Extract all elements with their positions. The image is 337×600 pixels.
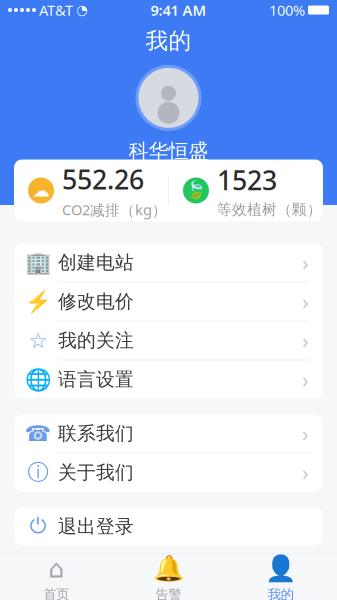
staticText: 等效植树（颗） xyxy=(217,201,322,219)
button[interactable]: ⓘ xyxy=(14,453,323,491)
staticText: 我的 xyxy=(268,586,294,600)
staticText: ◔ xyxy=(76,2,88,17)
staticText: › xyxy=(302,248,309,277)
staticText: 🌐 xyxy=(24,367,51,392)
staticText: 9:41 AM xyxy=(150,0,206,20)
staticText: AT&T xyxy=(39,0,73,20)
staticText: ⏻ xyxy=(29,516,46,537)
staticText: 退出登录 xyxy=(58,515,134,538)
staticText: 告警 xyxy=(155,586,181,600)
staticText: ⌂ xyxy=(48,554,64,583)
staticText: › xyxy=(302,419,309,448)
staticText: › xyxy=(302,326,309,355)
staticText: 联系我们 xyxy=(58,422,134,445)
staticText: 100% xyxy=(269,0,305,20)
staticText: › xyxy=(302,458,309,487)
button[interactable]: ⏻ xyxy=(14,507,323,545)
staticText: 🏢 xyxy=(24,250,51,275)
staticText: 1523 xyxy=(217,162,277,198)
staticText: 首页 xyxy=(43,586,69,600)
staticText: ☆ xyxy=(28,328,47,353)
staticText: 修改电价 xyxy=(58,290,134,313)
button[interactable]: ☎ xyxy=(14,414,323,453)
button[interactable]: 🏢 xyxy=(14,243,323,282)
staticText: › xyxy=(302,365,309,394)
staticText: 科华恒盛 xyxy=(128,139,208,163)
staticText: ⓘ xyxy=(27,459,48,486)
staticText: CO2减排（kg） xyxy=(62,200,167,219)
staticText: 创建电站 xyxy=(58,251,134,274)
button[interactable]: ⚡ xyxy=(14,282,323,321)
staticText: ☁ xyxy=(32,181,49,200)
staticText: › xyxy=(302,287,309,316)
button[interactable]: 👤 xyxy=(225,554,337,600)
staticText: ⚡ xyxy=(24,289,51,314)
staticText: 我的关注 xyxy=(58,329,134,352)
button[interactable]: ☆ xyxy=(14,321,323,360)
staticText: 语言设置 xyxy=(58,368,134,391)
staticText: ☎ xyxy=(24,421,51,446)
staticText: 我的 xyxy=(145,27,191,55)
staticText: 关于我们 xyxy=(58,461,134,484)
staticText: 552.26 xyxy=(62,161,144,197)
button[interactable]: ⌂ xyxy=(0,554,112,600)
staticText: 🔔 xyxy=(152,554,184,583)
staticText: 🍃 xyxy=(185,181,207,200)
staticText: 👤 xyxy=(265,554,297,583)
button[interactable]: 🌐 xyxy=(14,360,323,398)
button[interactable]: 🔔 xyxy=(112,554,225,600)
